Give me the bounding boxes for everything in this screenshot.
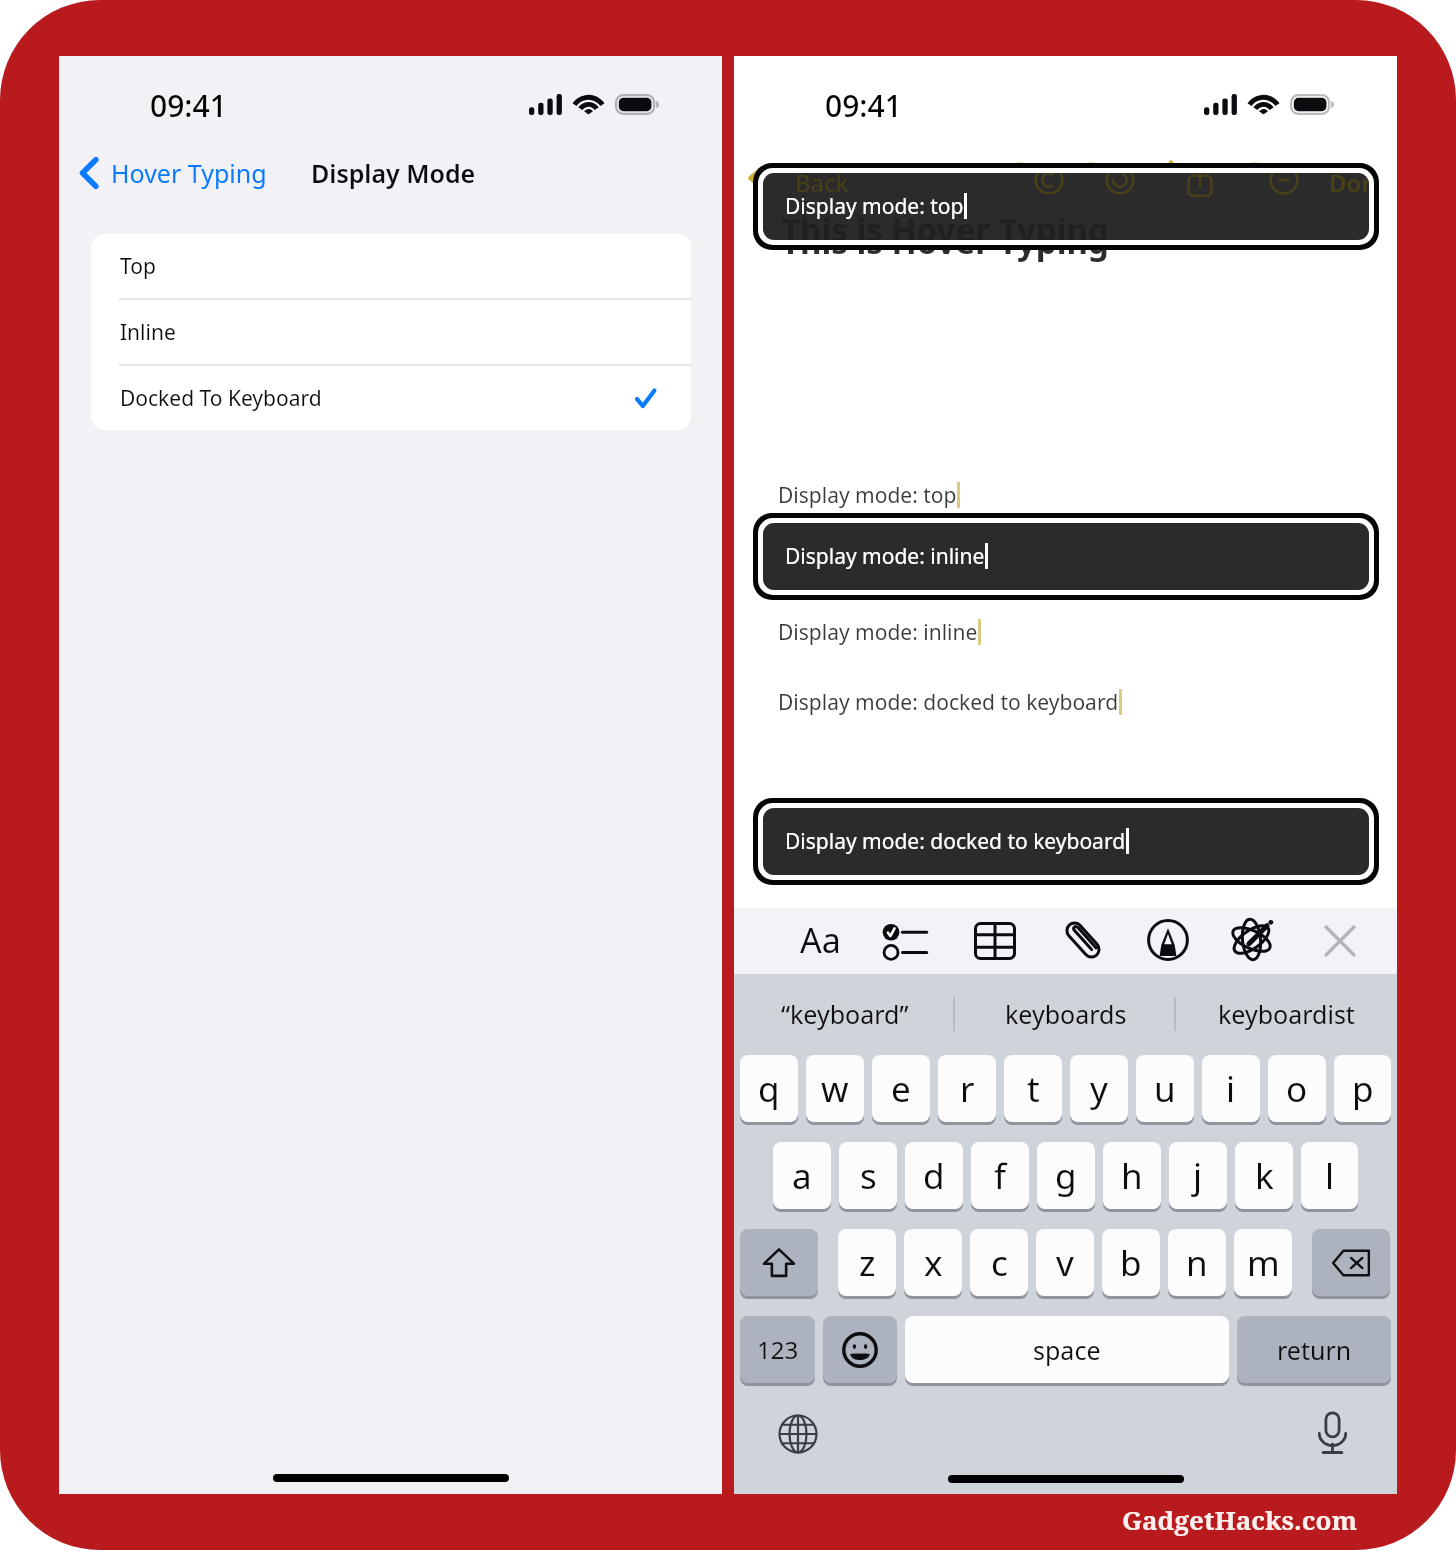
button[interactable]: Emoji <box>823 1316 897 1383</box>
staticText: return <box>1277 1333 1352 1367</box>
button[interactable]: Display mode: top <box>763 173 1369 240</box>
button[interactable]: q <box>740 1055 798 1122</box>
button[interactable]: Backspace <box>1312 1229 1390 1296</box>
button[interactable]: Display mode: docked to keyboard <box>763 808 1369 875</box>
staticText: l <box>1325 1152 1335 1200</box>
button[interactable]: l <box>1301 1142 1358 1209</box>
button[interactable]: Close <box>1324 925 1356 957</box>
other: Shift <box>762 1246 796 1280</box>
staticText: This is Hover Typing <box>781 207 1109 240</box>
button[interactable]: z <box>838 1229 896 1296</box>
button[interactable]: w <box>806 1055 864 1122</box>
staticText: f <box>994 1152 1007 1200</box>
button[interactable]: Top <box>91 234 691 298</box>
button[interactable]: r <box>938 1055 996 1122</box>
staticText: Top <box>120 252 156 281</box>
button[interactable]: h <box>1103 1142 1161 1209</box>
button[interactable]: p <box>1334 1055 1391 1122</box>
button[interactable]: More <box>1240 162 1270 192</box>
button[interactable]: Checklist <box>884 922 928 960</box>
button[interactable]: Attach <box>1064 917 1102 963</box>
button[interactable]: Display mode: inline <box>763 523 1369 590</box>
button[interactable]: k <box>1235 1142 1293 1209</box>
staticText: k <box>1255 1152 1274 1200</box>
staticText: h <box>1121 1152 1143 1200</box>
staticText: “keyboard” <box>781 997 909 1031</box>
button[interactable]: Share <box>1158 160 1184 194</box>
staticText: m <box>1247 1239 1280 1287</box>
staticText: e <box>891 1065 911 1113</box>
staticText: a <box>792 1152 812 1200</box>
staticText: w <box>821 1065 849 1113</box>
button[interactable]: Markup <box>1147 919 1189 961</box>
button[interactable]: Dictate <box>1316 1412 1349 1455</box>
button[interactable]: “keyboard” <box>734 974 955 1054</box>
staticText: u <box>1154 1065 1176 1113</box>
button[interactable]: n <box>1168 1229 1226 1296</box>
button[interactable]: a <box>773 1142 831 1209</box>
button[interactable]: Shift <box>740 1229 818 1296</box>
staticText: b <box>1120 1239 1142 1287</box>
staticText: keyboardist <box>1218 997 1355 1031</box>
button[interactable]: j <box>1169 1142 1227 1209</box>
button[interactable]: s <box>839 1142 897 1209</box>
staticText: Display mode: top <box>778 481 957 510</box>
button[interactable]: space <box>905 1316 1229 1383</box>
button[interactable]: keyboards <box>955 974 1176 1054</box>
staticText: c <box>991 1239 1008 1287</box>
staticText: 09:41 <box>825 85 902 126</box>
staticText: Inline <box>120 318 176 347</box>
staticText: Back <box>795 173 849 199</box>
staticText: space <box>1033 1333 1101 1367</box>
staticText: x <box>924 1239 943 1287</box>
staticText: i <box>1226 1065 1236 1113</box>
button[interactable]: 123 <box>740 1316 815 1383</box>
button[interactable]: v <box>1036 1229 1094 1296</box>
staticText: GadgetHacks.com <box>1122 1502 1358 1537</box>
button[interactable]: Table <box>974 922 1016 960</box>
button[interactable]: e <box>872 1055 930 1122</box>
button[interactable]: Aa <box>794 916 846 964</box>
staticText: q <box>758 1065 780 1113</box>
button[interactable]: Redo <box>1076 162 1106 192</box>
button[interactable]: y <box>1070 1055 1128 1122</box>
staticText: Back <box>767 161 821 194</box>
other: Emoji <box>842 1332 878 1368</box>
button[interactable]: Docked To Keyboard <box>91 366 691 430</box>
staticText: This is Hover Typing <box>781 219 1109 264</box>
staticText: Done <box>1313 161 1375 194</box>
staticText: Display Mode <box>311 156 476 190</box>
button[interactable]: x <box>904 1229 962 1296</box>
staticText: s <box>860 1152 877 1200</box>
button[interactable]: Done <box>1291 153 1397 202</box>
button[interactable]: Scan document <box>1230 918 1273 961</box>
button[interactable]: f <box>971 1142 1029 1209</box>
button[interactable]: c <box>970 1229 1028 1296</box>
button[interactable]: b <box>1102 1229 1160 1296</box>
button[interactable]: Inline <box>91 300 691 364</box>
staticText: 123 <box>757 1333 799 1366</box>
button[interactable]: Change keyboard <box>778 1414 818 1454</box>
staticText: g <box>1055 1152 1077 1200</box>
staticText: Display mode: inline <box>785 542 985 571</box>
button[interactable]: o <box>1268 1055 1326 1122</box>
staticText: t <box>1027 1065 1040 1113</box>
staticText: p <box>1352 1065 1374 1113</box>
staticText: Display mode: docked to keyboard <box>785 827 1126 856</box>
button[interactable]: d <box>905 1142 963 1209</box>
button[interactable]: Hover Typing <box>80 153 275 193</box>
button[interactable]: u <box>1136 1055 1194 1122</box>
button[interactable]: m <box>1234 1229 1292 1296</box>
button[interactable]: keyboardist <box>1176 974 1397 1054</box>
staticText: o <box>1286 1065 1308 1113</box>
button[interactable]: Back <box>734 161 831 194</box>
button[interactable]: t <box>1004 1055 1062 1122</box>
staticText: Display mode: docked to keyboard <box>778 688 1119 717</box>
staticText: 09:41 <box>150 85 227 126</box>
button[interactable]: i <box>1202 1055 1260 1122</box>
button[interactable]: return <box>1237 1316 1391 1383</box>
staticText: z <box>859 1239 876 1287</box>
staticText: v <box>1056 1239 1074 1287</box>
button[interactable]: g <box>1037 1142 1095 1209</box>
button[interactable]: Undo <box>1005 162 1035 192</box>
